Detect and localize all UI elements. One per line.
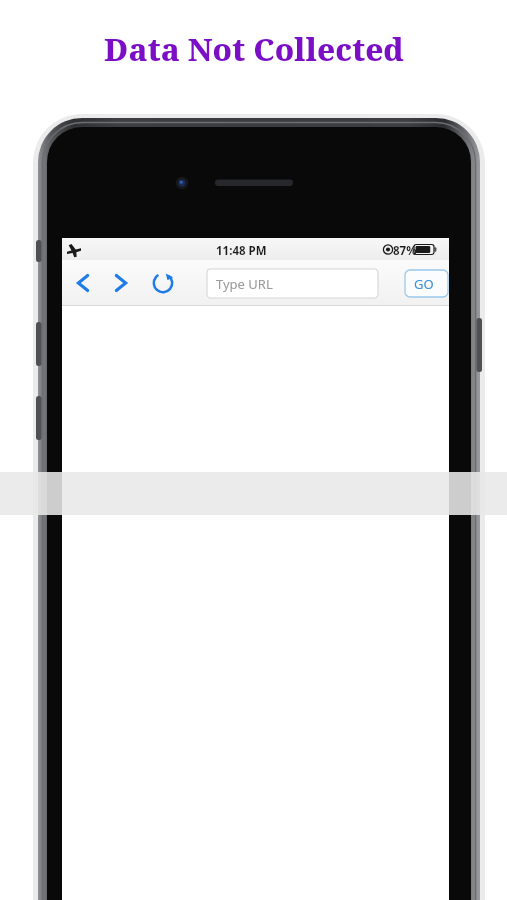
staticText: Type URL [216,275,273,293]
staticText: GO [414,275,434,293]
button[interactable] [405,270,448,297]
button[interactable]: Back [68,268,98,300]
staticText: 87% [393,243,417,259]
staticText: Data Not Collected [104,28,404,70]
button[interactable]: Reload [147,268,179,300]
button[interactable]: Type URL [207,269,378,298]
button[interactable]: Forward [107,268,137,300]
staticText: 11:48 PM [216,243,267,259]
